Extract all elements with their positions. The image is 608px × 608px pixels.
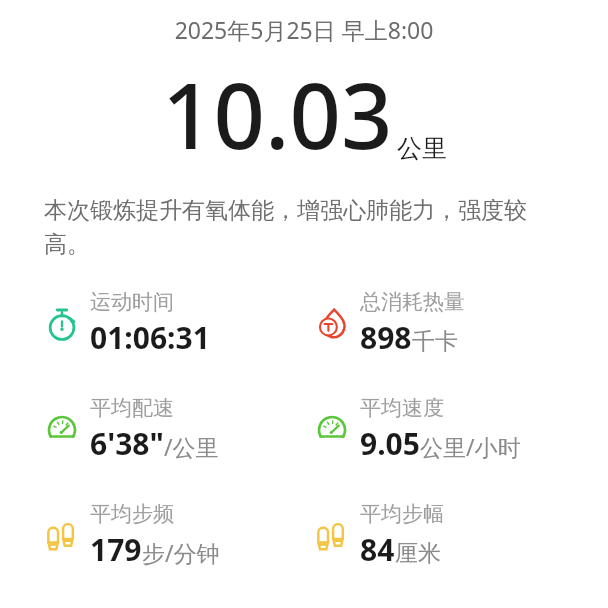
button[interactable]: 平均配速: [0, 393, 304, 466]
staticText: 公里/小时: [420, 431, 521, 462]
staticText: /公里: [164, 431, 219, 462]
staticText: 2025年5月25日 早上8:00: [0, 14, 608, 45]
button[interactable]: 总消耗热量: [304, 287, 608, 360]
staticText: 平均步幅: [360, 501, 444, 527]
staticText: 6'38": [90, 423, 164, 464]
staticText: 总消耗热量: [360, 289, 465, 315]
staticText: 01:06:31: [90, 317, 210, 358]
button[interactable]: 平均速度: [304, 393, 608, 466]
other: 平均配速: [42, 410, 82, 450]
other: 平均速度: [312, 410, 352, 450]
other: 平均步频: [42, 516, 82, 556]
staticText: 平均配速: [90, 395, 174, 421]
other: 总消耗热量: [312, 304, 352, 344]
button[interactable]: 运动时间: [0, 287, 304, 360]
staticText: 平均速度: [360, 395, 444, 421]
staticText: 9.05: [360, 423, 420, 464]
staticText: 本次锻炼提升有氧体能，增强心肺能力，强度较高。: [44, 196, 564, 259]
staticText: 平均步频: [90, 501, 174, 527]
staticText: 10.03: [162, 53, 393, 176]
other: 平均步幅: [312, 516, 352, 556]
staticText: 运动时间: [90, 289, 174, 315]
staticText: 步/分钟: [142, 537, 220, 568]
staticText: 千卡: [412, 327, 458, 356]
staticText: 公里: [397, 133, 447, 164]
button[interactable]: 平均步幅: [304, 499, 608, 572]
staticText: 179: [90, 529, 142, 570]
button[interactable]: 平均步频: [0, 499, 304, 572]
staticText: 84: [360, 529, 395, 570]
other: 运动时间: [42, 304, 82, 344]
staticText: 898: [360, 317, 412, 358]
staticText: 厘米: [395, 539, 441, 568]
